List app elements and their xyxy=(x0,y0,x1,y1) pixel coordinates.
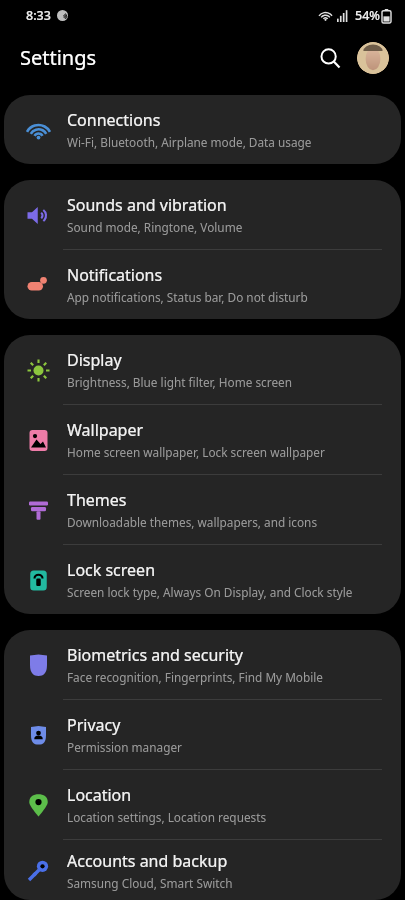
staticText: Sounds and vibration xyxy=(67,194,227,216)
button[interactable]: Accounts and backup xyxy=(4,840,401,900)
button[interactable]: Display xyxy=(4,335,401,405)
staticText: Downloadable themes, wallpapers, and ico… xyxy=(67,514,318,530)
button[interactable]: Themes xyxy=(4,475,401,545)
staticText: Brightness, Blue light filter, Home scre… xyxy=(67,374,292,390)
staticText: Wallpaper xyxy=(67,419,144,441)
staticText: Wi-Fi, Bluetooth, Airplane mode, Data us… xyxy=(67,134,312,150)
staticText: App notifications, Status bar, Do not di… xyxy=(67,289,308,305)
staticText: Face recognition, Fingerprints, Find My … xyxy=(67,669,323,685)
staticText: Settings xyxy=(20,44,97,71)
staticText: Privacy xyxy=(67,714,121,736)
staticText: Location settings, Location requests xyxy=(67,809,267,825)
staticText: Permission manager xyxy=(67,739,182,755)
button[interactable]: Wallpaper xyxy=(4,405,401,475)
staticText: 54% xyxy=(355,7,380,24)
staticText: Home screen wallpaper, Lock screen wallp… xyxy=(67,444,325,460)
staticText: Screen lock type, Always On Display, and… xyxy=(67,584,353,600)
staticText: Lock screen xyxy=(67,559,156,581)
staticText: Biometrics and security xyxy=(67,644,244,666)
button[interactable]: Location xyxy=(4,770,401,840)
staticText: Connections xyxy=(67,109,161,131)
button[interactable]: Search xyxy=(309,37,351,79)
staticText: Notifications xyxy=(67,264,163,286)
button[interactable]: Connections xyxy=(4,95,401,164)
button[interactable]: Privacy xyxy=(4,700,401,770)
staticText: Themes xyxy=(67,489,127,511)
button[interactable]: Lock screen xyxy=(4,545,401,614)
staticText: Accounts and backup xyxy=(67,850,228,872)
staticText: 8:33 xyxy=(26,7,51,24)
button[interactable]: Sounds and vibration xyxy=(4,180,401,250)
button[interactable]: Biometrics and security xyxy=(4,630,401,700)
staticText: Sound mode, Ringtone, Volume xyxy=(67,219,243,235)
staticText: Display xyxy=(67,349,122,371)
staticText: Samsung Cloud, Smart Switch xyxy=(67,875,233,891)
button[interactable]: Notifications xyxy=(4,250,401,319)
staticText: Location xyxy=(67,784,132,806)
button[interactable]: Account profile xyxy=(357,42,389,74)
